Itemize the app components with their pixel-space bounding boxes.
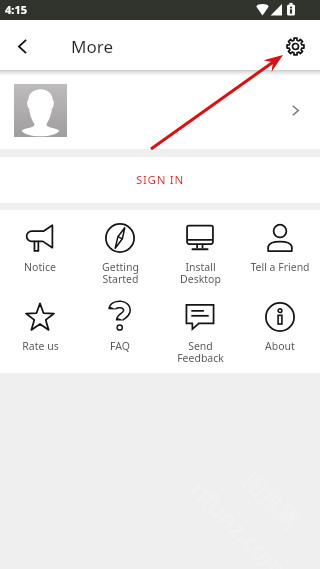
button[interactable]: Tell a Friend — [240, 210, 320, 289]
button[interactable]: Rate us — [0, 289, 80, 368]
staticText: Getting Started — [102, 260, 139, 286]
button[interactable]: Getting Started — [80, 210, 160, 289]
button[interactable]: SIGN IN — [0, 157, 320, 203]
staticText: SIGN IN — [136, 172, 184, 188]
button[interactable]: About — [240, 289, 320, 368]
staticText: About — [265, 339, 295, 353]
button[interactable]: Send Feedback — [160, 289, 240, 368]
button[interactable]: Install Desktop — [160, 210, 240, 289]
staticText: Tell a Friend — [250, 260, 310, 274]
staticText: Notice — [24, 260, 56, 274]
staticText: 4:15 — [5, 2, 27, 17]
button[interactable]: Settings — [276, 20, 320, 70]
button[interactable]: Notice — [0, 210, 80, 289]
staticText: Install Desktop — [180, 260, 221, 286]
staticText: Send Feedback — [177, 339, 224, 365]
button[interactable]: FAQ — [80, 289, 160, 368]
staticText: Rate us — [22, 339, 59, 353]
button[interactable]: Back — [0, 20, 44, 70]
staticText: FAQ — [110, 339, 130, 353]
staticText: More — [71, 35, 113, 58]
button[interactable] — [0, 70, 320, 149]
